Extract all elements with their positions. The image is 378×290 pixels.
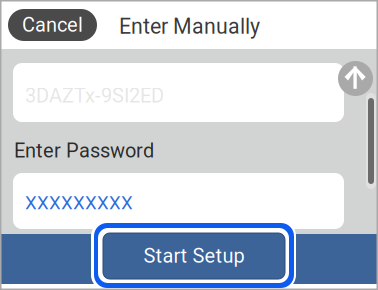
staticText: Enter Password — [14, 139, 154, 162]
staticText: Cancel — [22, 13, 83, 37]
staticText: 3DAZTx-9SI2ED — [25, 84, 164, 107]
staticText: Enter Manually — [119, 14, 260, 39]
button[interactable]: Cancel — [8, 9, 97, 41]
button[interactable]: Scroll to top — [338, 61, 373, 96]
button[interactable]: Start Setup — [91, 221, 296, 290]
staticText: XXXXXXXXX — [25, 192, 133, 214]
staticText: Start Setup — [143, 244, 244, 268]
